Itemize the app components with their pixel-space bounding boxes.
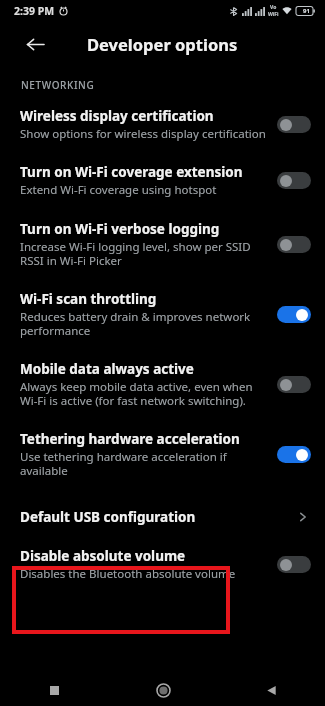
- staticText: Show options for wireless display certif…: [20, 126, 266, 142]
- button[interactable]: Toggle off: [277, 236, 311, 253]
- staticText: Reduces battery drain & improves network…: [20, 309, 267, 339]
- button[interactable]: Toggle off: [277, 556, 311, 573]
- button[interactable]: Mobile data always active: [0, 360, 325, 409]
- button[interactable]: Toggle on: [277, 446, 311, 463]
- button[interactable]: Recent apps: [0, 674, 109, 706]
- button[interactable]: Toggle on: [277, 306, 311, 323]
- staticText: 91: [303, 7, 310, 15]
- staticText: Wireless display certification: [20, 107, 214, 125]
- staticText: Increase Wi-Fi logging level, show per S…: [20, 239, 267, 269]
- button[interactable]: Wi-Fi scan throttling: [0, 290, 325, 339]
- button[interactable]: Disable absolute volume: [0, 547, 325, 582]
- button[interactable]: Toggle off: [277, 116, 311, 133]
- button[interactable]: Turn on Wi-Fi verbose logging: [0, 220, 325, 269]
- staticText: Tethering hardware acceleration: [20, 430, 240, 448]
- staticText: Wi-Fi scan throttling: [20, 290, 157, 308]
- staticText: Default USB configuration: [20, 508, 196, 526]
- staticText: Disables the Bluetooth absolute volume: [20, 566, 236, 582]
- staticText: 2:39 PM: [14, 4, 55, 18]
- staticText: WiFi: [268, 11, 279, 18]
- button[interactable]: Toggle off: [277, 172, 311, 189]
- staticText: Mobile data always active: [20, 360, 194, 378]
- button[interactable]: Default USB configuration: [0, 491, 325, 543]
- staticText: Always keep mobile data active, even whe…: [20, 379, 267, 409]
- button[interactable]: Toggle off: [277, 376, 311, 393]
- staticText: Use tethering hardware acceleration if a…: [20, 449, 267, 479]
- staticText: Disable absolute volume: [20, 547, 186, 565]
- staticText: Extend Wi-Fi coverage using hotspot: [20, 182, 217, 198]
- staticText: Turn on Wi-Fi coverage extension: [20, 163, 243, 181]
- button[interactable]: Back: [217, 674, 325, 706]
- staticText: Vo: [270, 4, 277, 11]
- button[interactable]: Wireless display certification: [0, 107, 325, 142]
- button[interactable]: Home: [109, 674, 217, 706]
- staticText: Developer options: [87, 33, 238, 55]
- staticText: Turn on Wi-Fi verbose logging: [20, 220, 220, 238]
- button[interactable]: Turn on Wi-Fi coverage extension: [0, 163, 325, 198]
- staticText: NETWORKING: [21, 78, 95, 92]
- button[interactable]: Tethering hardware acceleration: [0, 430, 325, 479]
- button[interactable]: Back: [21, 30, 49, 58]
